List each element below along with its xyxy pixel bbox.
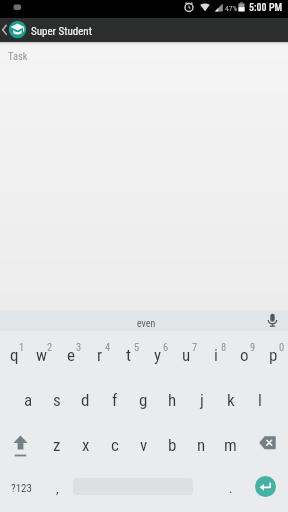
staticText: 6 bbox=[163, 341, 169, 353]
button[interactable]: e bbox=[56, 331, 85, 376]
staticText: p bbox=[269, 345, 278, 365]
button[interactable]: y bbox=[143, 331, 172, 376]
button[interactable]: c bbox=[100, 421, 129, 466]
staticText: c bbox=[111, 435, 119, 455]
staticText: e bbox=[67, 345, 75, 365]
staticText: r bbox=[97, 345, 103, 365]
button[interactable] bbox=[261, 310, 282, 331]
staticText: Super Student bbox=[31, 25, 92, 38]
button[interactable]: , bbox=[43, 466, 72, 511]
staticText: ?123 bbox=[11, 482, 32, 495]
button[interactable]: v bbox=[129, 421, 158, 466]
staticText: a bbox=[24, 390, 33, 410]
button[interactable]: j bbox=[187, 376, 216, 421]
button[interactable]: w bbox=[28, 331, 56, 376]
staticText: x bbox=[82, 435, 90, 455]
staticText: 3 bbox=[76, 341, 82, 353]
staticText: 5:00 PM bbox=[249, 2, 283, 14]
staticText: k bbox=[227, 390, 235, 410]
staticText: 8 bbox=[221, 341, 227, 353]
button[interactable]: g bbox=[129, 376, 158, 421]
button[interactable] bbox=[0, 421, 43, 466]
staticText: q bbox=[10, 345, 19, 365]
button[interactable]: q bbox=[0, 331, 28, 376]
button[interactable]: u bbox=[172, 331, 201, 376]
staticText: o bbox=[240, 345, 249, 365]
staticText: i bbox=[214, 345, 218, 365]
staticText: , bbox=[56, 481, 59, 496]
button[interactable] bbox=[245, 421, 288, 466]
staticText: even bbox=[137, 318, 156, 330]
staticText: 0 bbox=[279, 341, 285, 353]
button[interactable]: a bbox=[14, 376, 42, 421]
staticText: d bbox=[81, 390, 90, 410]
button[interactable]: p bbox=[259, 331, 288, 376]
button[interactable]: s bbox=[42, 376, 71, 421]
staticText: h bbox=[168, 390, 177, 410]
button[interactable] bbox=[255, 476, 276, 497]
button[interactable]: . bbox=[216, 466, 245, 511]
button[interactable]: h bbox=[158, 376, 187, 421]
button[interactable]: x bbox=[71, 421, 100, 466]
button[interactable]: t bbox=[114, 331, 143, 376]
button[interactable]: b bbox=[158, 421, 187, 466]
staticText: b bbox=[168, 435, 177, 455]
button[interactable]: Super Student bbox=[0, 18, 288, 42]
button[interactable]: z bbox=[43, 421, 71, 466]
staticText: m bbox=[224, 435, 237, 455]
staticText: Task bbox=[8, 50, 28, 62]
staticText: y bbox=[154, 345, 162, 365]
staticText: z bbox=[53, 435, 61, 455]
staticText: u bbox=[182, 345, 191, 365]
staticText: n bbox=[197, 435, 206, 455]
button[interactable]: f bbox=[100, 376, 129, 421]
staticText: v bbox=[140, 435, 148, 455]
staticText: j bbox=[200, 390, 204, 410]
staticText: s bbox=[53, 390, 61, 410]
staticText: g bbox=[139, 390, 148, 410]
staticText: w bbox=[36, 345, 48, 365]
staticText: l bbox=[258, 390, 262, 410]
button[interactable]: d bbox=[71, 376, 100, 421]
button[interactable]: Task bbox=[8, 50, 288, 86]
staticText: 5 bbox=[134, 341, 140, 353]
button[interactable]: o bbox=[230, 331, 259, 376]
button[interactable]: i bbox=[201, 331, 230, 376]
staticText: 4 bbox=[105, 341, 111, 353]
button[interactable]: m bbox=[216, 421, 245, 466]
button[interactable]: n bbox=[187, 421, 216, 466]
staticText: t bbox=[126, 345, 132, 365]
button[interactable]: r bbox=[85, 331, 114, 376]
staticText: 2 bbox=[47, 341, 53, 353]
staticText: 47% bbox=[225, 4, 238, 13]
staticText: f bbox=[112, 390, 118, 410]
button[interactable]: even bbox=[137, 318, 156, 330]
button[interactable]: k bbox=[216, 376, 245, 421]
button[interactable]: ?123 bbox=[0, 466, 43, 511]
staticText: 7 bbox=[192, 341, 198, 353]
staticText: 9 bbox=[250, 341, 256, 353]
staticText: 1 bbox=[19, 341, 25, 353]
button[interactable]: l bbox=[245, 376, 274, 421]
staticText: . bbox=[229, 481, 233, 496]
